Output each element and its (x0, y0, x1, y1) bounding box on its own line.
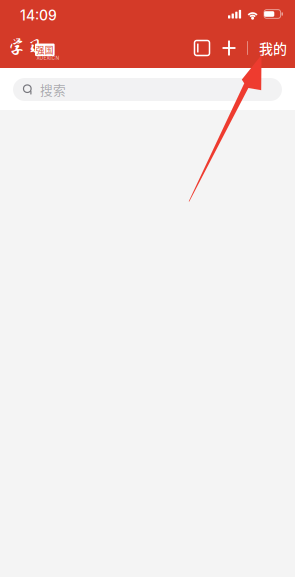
staticText: 我的 (259, 38, 287, 58)
button[interactable]: 搜索 (13, 78, 282, 101)
button[interactable]: 我的 (259, 38, 287, 58)
staticText: 14:09 (20, 7, 57, 24)
staticText: 搜索 (40, 80, 66, 99)
button[interactable]: 学习书架 (192, 38, 212, 58)
button[interactable]: 添加 (219, 38, 239, 58)
staticText: XUEXI.CN (36, 55, 59, 61)
staticText: 强国 (36, 43, 54, 56)
staticText: 学习 (7, 37, 43, 57)
